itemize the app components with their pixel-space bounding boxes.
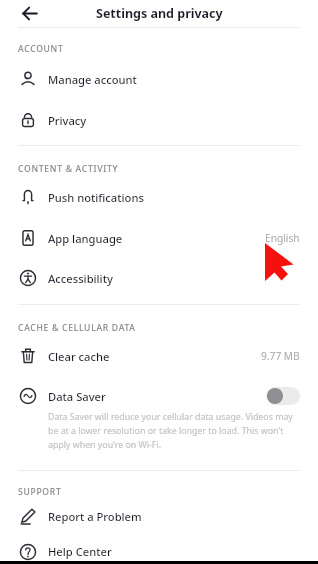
staticText: 9.77 MB bbox=[261, 349, 300, 363]
button[interactable]: Report a Problem bbox=[0, 499, 318, 533]
staticText: SUPPORT bbox=[18, 486, 62, 498]
button[interactable]: Help Center bbox=[0, 539, 318, 564]
staticText: Settings and privacy bbox=[96, 5, 223, 22]
staticText: App language bbox=[48, 231, 123, 246]
staticText: Manage account bbox=[48, 72, 137, 87]
button[interactable]: Back bbox=[16, 0, 44, 27]
staticText: Accessibility bbox=[48, 271, 113, 286]
staticText: Report a Problem bbox=[48, 509, 142, 524]
button[interactable]: App language bbox=[0, 221, 318, 255]
button[interactable]: Push notifications bbox=[0, 180, 318, 214]
button[interactable]: Data Saver toggle bbox=[266, 387, 300, 405]
button[interactable]: Accessibility bbox=[0, 261, 318, 295]
staticText: Push notifications bbox=[48, 190, 144, 205]
staticText: Help Center bbox=[48, 544, 112, 559]
button[interactable]: Manage account bbox=[0, 62, 318, 96]
staticText: English bbox=[265, 231, 300, 245]
staticText: Privacy bbox=[48, 113, 87, 128]
button[interactable]: Data Saver bbox=[0, 379, 318, 413]
button[interactable]: Clear cache bbox=[0, 339, 318, 373]
staticText: CACHE & CELLULAR DATA bbox=[18, 322, 136, 334]
staticText: CONTENT & ACTIVITY bbox=[18, 163, 119, 175]
staticText: ACCOUNT bbox=[18, 43, 64, 55]
button[interactable]: Privacy bbox=[0, 103, 318, 137]
staticText: Data Saver will reduce your cellular dat… bbox=[48, 411, 294, 450]
staticText: Data Saver bbox=[48, 389, 106, 404]
staticText: Clear cache bbox=[48, 349, 110, 364]
